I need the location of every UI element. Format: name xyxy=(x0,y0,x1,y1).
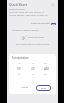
staticText: 30 xyxy=(31,67,35,71)
staticText: Set expiration xyxy=(12,56,29,59)
staticText: Visible to everyone xyxy=(31,22,50,25)
staticText: 08 xyxy=(18,73,21,76)
staticText: 10 xyxy=(18,62,21,65)
staticText: 25 xyxy=(32,62,35,65)
staticText: Cancel xyxy=(21,86,29,89)
button[interactable]: 10 xyxy=(13,62,25,76)
button[interactable]: 25 xyxy=(27,62,39,76)
staticText: Edit xyxy=(52,23,55,25)
button[interactable]: Cancel xyxy=(20,85,30,90)
staticText: Tap a device below to begin sharing xyxy=(9,43,56,46)
staticText: Done xyxy=(41,87,47,90)
button[interactable]: PM xyxy=(40,62,52,76)
button[interactable]: Account xyxy=(51,3,55,7)
staticText: 35 xyxy=(32,73,35,76)
staticText: AM xyxy=(44,67,49,71)
staticText: 09 xyxy=(17,67,21,71)
staticText: Share files nearby xyxy=(9,8,25,11)
staticText: Files you share are sent directly to nea… xyxy=(9,11,49,17)
button[interactable]: Edit xyxy=(51,23,56,25)
staticText: Scanning nearby xyxy=(28,36,45,39)
staticText: Looking for nearby devices xyxy=(12,29,39,32)
button[interactable]: Done xyxy=(36,85,51,91)
staticText: Quick Share xyxy=(9,3,28,7)
staticText: PM xyxy=(44,73,48,76)
staticText: PM xyxy=(44,62,48,65)
